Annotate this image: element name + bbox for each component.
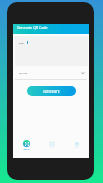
button[interactable]: History	[64, 138, 89, 144]
staticText: Generate	[23, 149, 30, 151]
button[interactable]: Generate	[13, 138, 39, 147]
button[interactable]: GENERATE	[27, 86, 76, 96]
button[interactable]: enter	[15, 36, 88, 66]
other: History	[75, 142, 79, 146]
other: Expand dropdown	[81, 71, 85, 75]
button[interactable]: Generate QR Code	[13, 24, 89, 34]
staticText: Scan	[50, 147, 54, 149]
staticText: GENERATE	[43, 89, 60, 94]
staticText: QR Code	[19, 72, 28, 75]
other: Scan	[50, 142, 54, 146]
staticText: History	[74, 147, 79, 149]
button[interactable]: QR Code	[15, 69, 87, 78]
staticText: enter	[19, 42, 25, 45]
button[interactable]: Scan	[39, 138, 64, 144]
staticText: Generate QR Code	[17, 25, 48, 30]
